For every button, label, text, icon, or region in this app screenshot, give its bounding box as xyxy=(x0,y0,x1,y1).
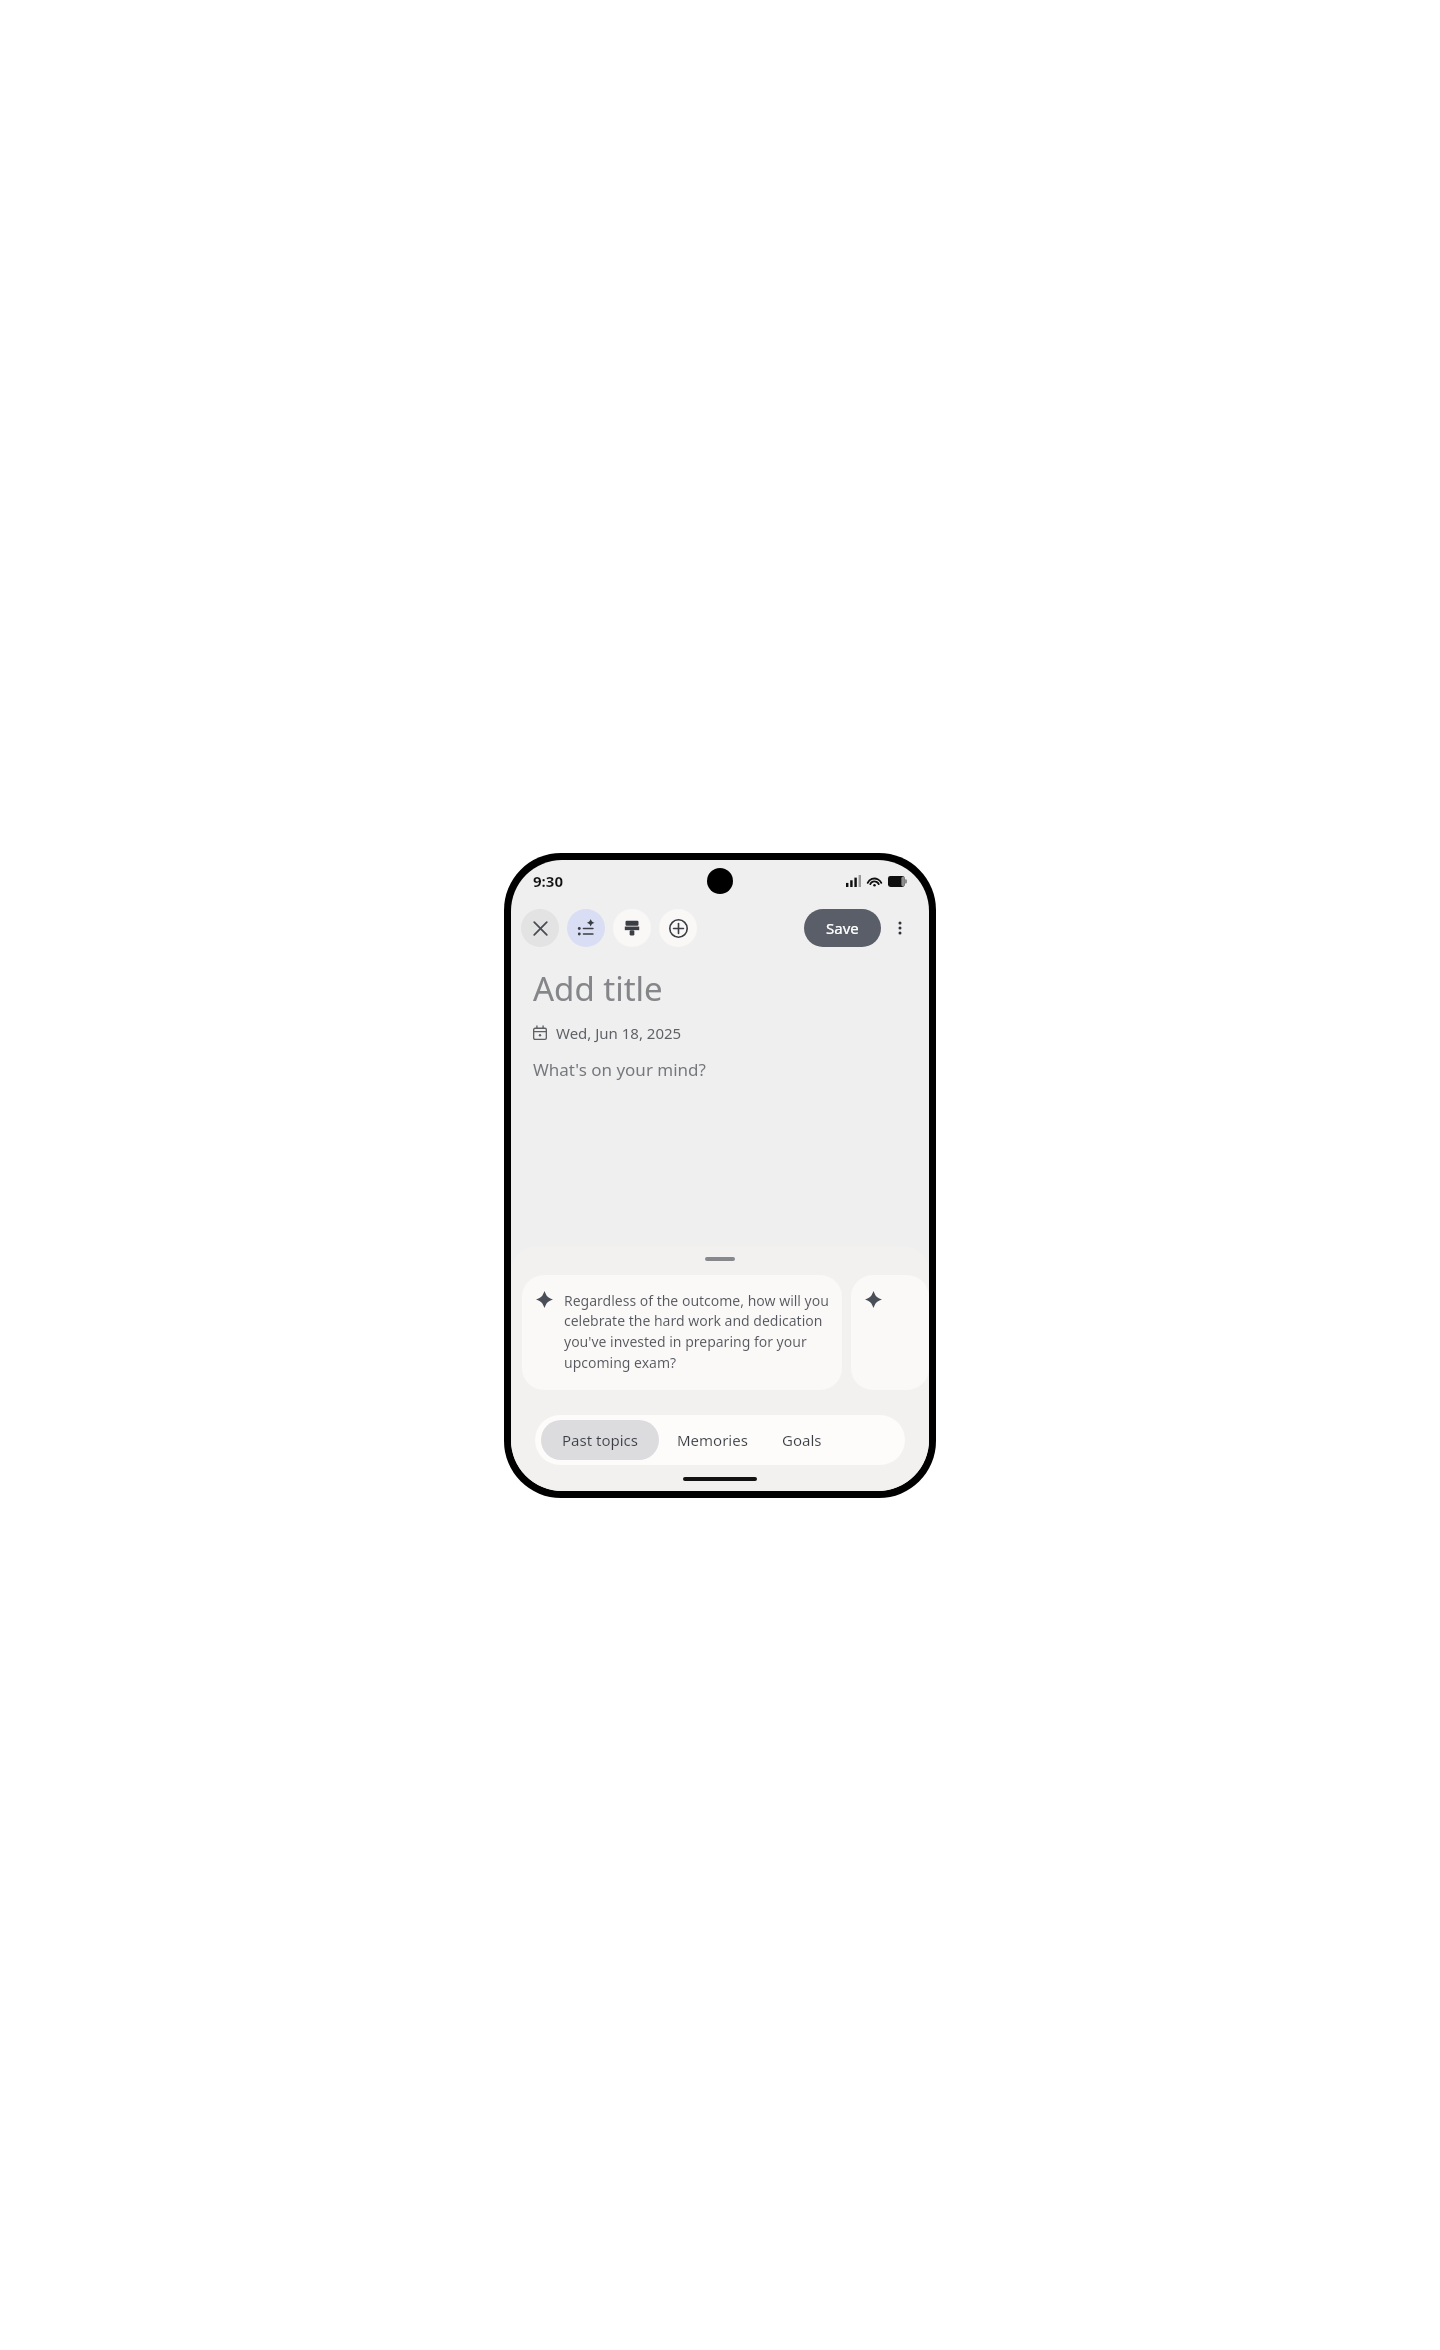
button[interactable]: What's on your mind? xyxy=(533,1058,706,1081)
button[interactable]: Add content xyxy=(659,909,697,947)
button[interactable]: Regardless of the outcome, how will you … xyxy=(522,1275,842,1390)
staticText: Memories xyxy=(677,1430,748,1450)
button[interactable]: Close xyxy=(521,909,559,947)
button[interactable]: Save xyxy=(804,909,881,947)
button[interactable]: Wed, Jun 18, 2025 xyxy=(533,1023,682,1043)
staticText: 9:30 xyxy=(533,871,563,891)
button[interactable]: Goals xyxy=(766,1420,838,1460)
button[interactable]: Past topics xyxy=(541,1420,659,1460)
staticText: Wed, Jun 18, 2025 xyxy=(556,1023,682,1043)
button[interactable]: Memories xyxy=(659,1420,766,1460)
button[interactable] xyxy=(851,1275,929,1390)
staticText: Save xyxy=(826,918,859,938)
button[interactable]: Add title xyxy=(533,966,663,1011)
button[interactable]: Format xyxy=(613,909,651,947)
staticText: Regardless of the outcome, how will you … xyxy=(564,1291,830,1373)
staticText: Past topics xyxy=(562,1430,638,1450)
button[interactable]: Smart suggestions xyxy=(567,909,605,947)
staticText: Goals xyxy=(782,1430,822,1450)
button[interactable]: More options xyxy=(881,909,919,947)
